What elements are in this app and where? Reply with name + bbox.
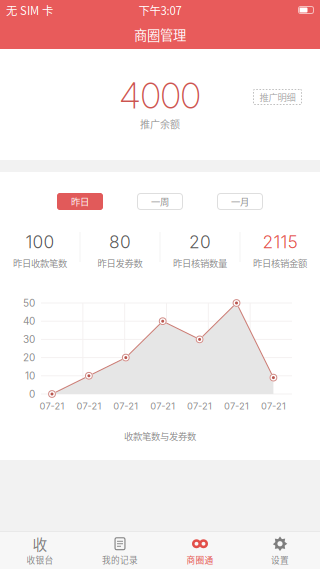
staticText: 07-21 [113, 400, 138, 412]
button[interactable]: 我的记录 [80, 532, 160, 569]
staticText: 昨日核销数量 [173, 256, 227, 270]
staticText: 推广明细 [259, 90, 295, 104]
button[interactable]: 一周 [137, 193, 183, 210]
staticText: 07-21 [39, 400, 64, 412]
staticText: 昨日发券数 [97, 256, 142, 270]
button[interactable]: 设置 [240, 532, 320, 569]
staticText: 下午3:07 [138, 2, 181, 18]
staticText: 07-21 [224, 400, 249, 412]
staticText: 30 [23, 333, 35, 345]
staticText: 80 [109, 231, 131, 252]
button[interactable]: 收 [0, 532, 80, 569]
staticText: 4000 [119, 75, 200, 117]
staticText: 设置 [271, 553, 289, 566]
staticText: 收款笔数与发券数 [124, 429, 196, 443]
staticText: 昨日 [71, 195, 89, 208]
button[interactable]: 一月 [217, 193, 263, 210]
staticText: 推广余额 [140, 117, 180, 131]
staticText: 无 SIM 卡 [6, 2, 53, 18]
staticText: 我的记录 [102, 553, 138, 566]
staticText: 20 [189, 231, 211, 252]
staticText: 20 [23, 352, 35, 364]
button[interactable]: 推广明细 [253, 89, 302, 105]
staticText: 收银台 [26, 553, 53, 566]
staticText: 07-21 [261, 400, 286, 412]
staticText: 50 [23, 297, 35, 309]
staticText: 昨日收款笔数 [13, 256, 67, 270]
staticText: 07-21 [150, 400, 175, 412]
staticText: 40 [23, 315, 35, 327]
staticText: 0 [29, 388, 35, 400]
staticText: 07-21 [187, 400, 212, 412]
staticText: 一周 [151, 195, 169, 208]
staticText: 2115 [262, 231, 297, 252]
button[interactable]: 商圈通 [160, 532, 240, 569]
staticText: 商圈管理 [134, 25, 186, 44]
button[interactable]: 昨日 [57, 193, 103, 210]
staticText: 一月 [231, 195, 249, 208]
staticText: 商圈通 [186, 553, 213, 566]
staticText: 昨日核销金额 [253, 256, 307, 270]
staticText: 100 [25, 231, 54, 252]
staticText: 收 [32, 533, 47, 554]
staticText: 10 [25, 370, 35, 382]
staticText: 07-21 [76, 400, 101, 412]
